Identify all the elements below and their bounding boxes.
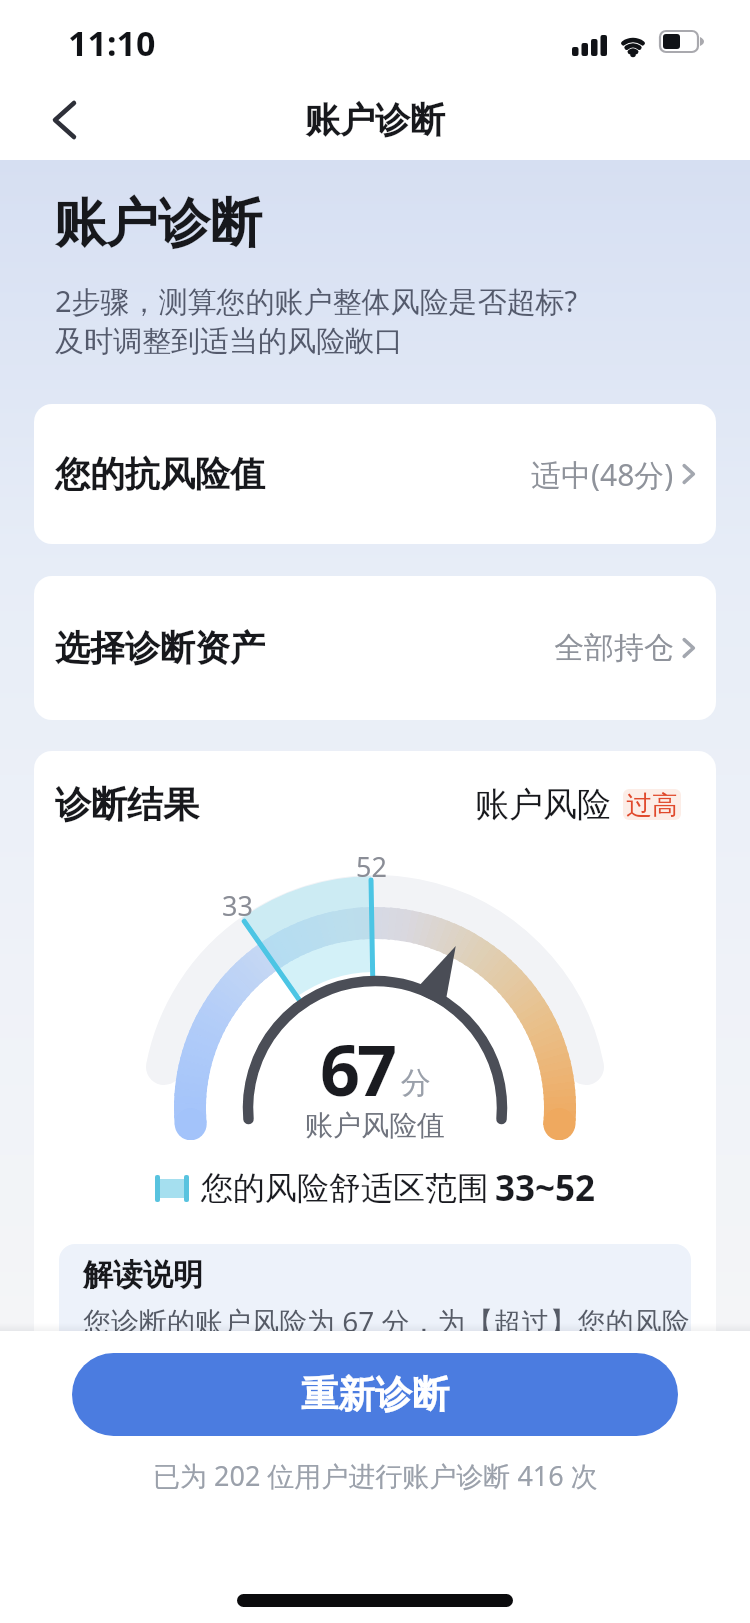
staticText: 适中(48分)	[531, 454, 674, 495]
staticText: 重新诊断	[301, 1371, 449, 1418]
staticText: 11:10	[68, 20, 156, 66]
button[interactable]: 重新诊断	[72, 1353, 678, 1436]
staticText: 账户诊断	[305, 98, 445, 142]
staticText: 52	[356, 848, 387, 885]
staticText: 已为 202 位用户进行账户诊断 416 次	[153, 1457, 598, 1494]
staticText: 2步骤，测算您的账户整体风险是否超标?	[55, 281, 578, 321]
staticText: 诊断结果	[55, 782, 199, 827]
staticText: 账户风险值	[305, 1108, 445, 1143]
staticText: 过高	[626, 789, 678, 820]
staticText: 分	[401, 1064, 431, 1102]
staticText: 33	[222, 887, 253, 924]
staticText: 选择诊断资产	[55, 626, 265, 670]
staticText: 您的风险舒适区范围	[201, 1168, 489, 1208]
staticText: 33~52	[495, 1164, 596, 1212]
button[interactable]: 您的抗风险值	[34, 404, 716, 544]
staticText: 账户诊断	[54, 191, 262, 257]
staticText: 解读说明	[83, 1256, 203, 1294]
button[interactable]: 选择诊断资产	[34, 576, 716, 720]
staticText: 您的抗风险值	[55, 452, 265, 496]
staticText: 账户风险	[475, 783, 611, 826]
button[interactable]	[40, 96, 88, 144]
staticText: 67	[320, 1021, 395, 1116]
staticText: 及时调整到适当的风险敞口	[55, 323, 403, 360]
staticText: 您诊断的账户风险为 67 分，为【超过】您的风险舒适区	[83, 1302, 691, 1379]
staticText: 全部持仓	[554, 629, 674, 667]
